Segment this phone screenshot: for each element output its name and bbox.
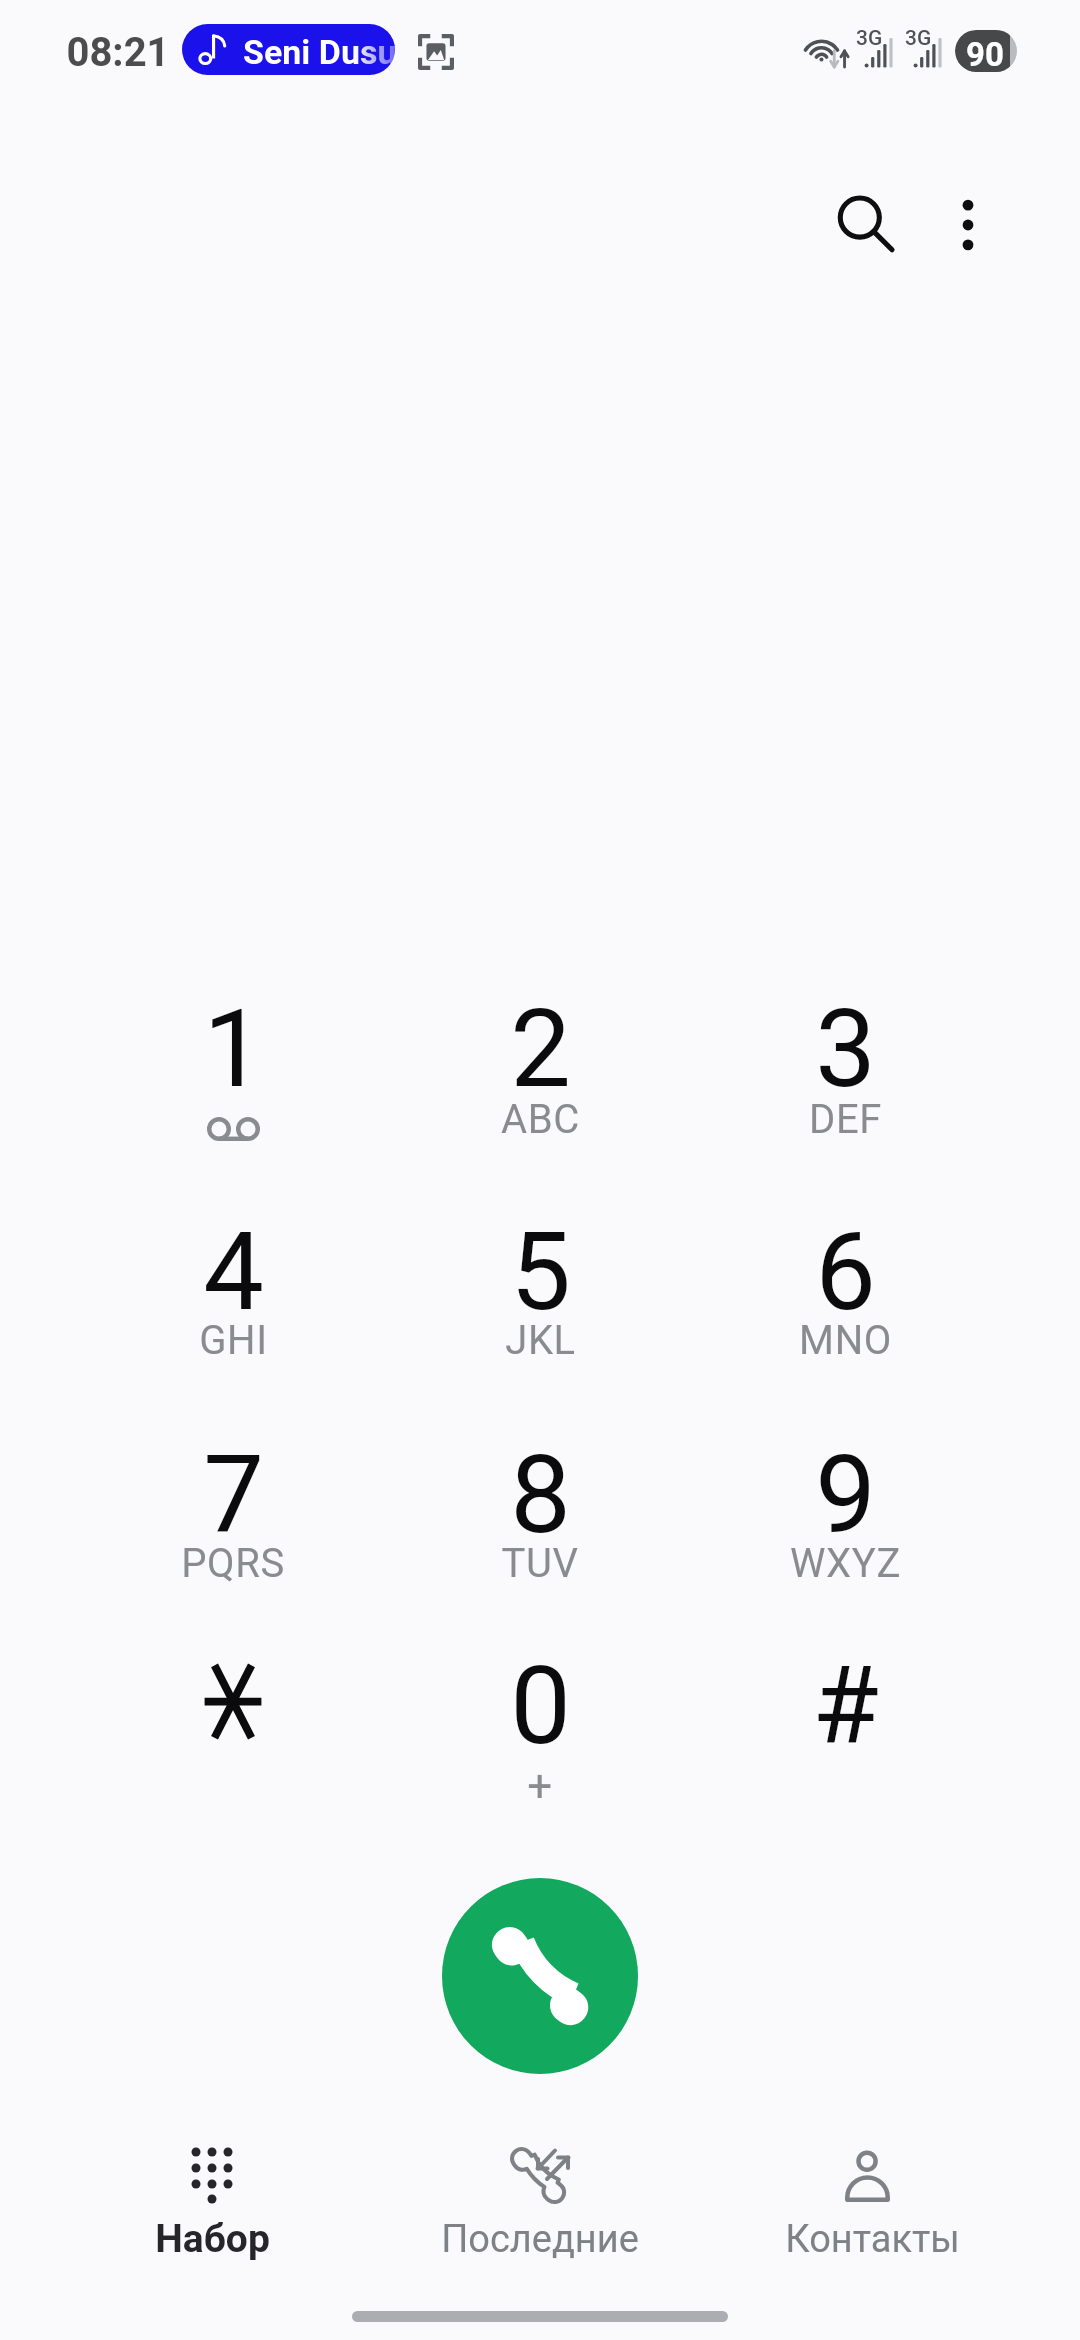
staticText: Контакты [785,2217,960,2262]
button[interactable]: More options [912,169,1024,281]
staticText: MNO [799,1317,892,1364]
button[interactable]: Key 4 [83,1177,383,1377]
button[interactable]: Key 2 [390,954,690,1154]
button[interactable]: Key 3 [695,954,995,1154]
button[interactable] [390,2130,690,2280]
staticText: PQRS [181,1540,285,1587]
button[interactable]: Key * [83,1611,383,1811]
staticText: 3G [905,26,932,51]
staticText: 3 [815,986,876,1113]
button[interactable] [62,2130,362,2280]
staticText: 9 [815,1432,876,1559]
staticText: Seni Dusu [243,32,395,72]
staticText: 6 [815,1209,876,1336]
button[interactable]: Key 5 [390,1177,690,1377]
staticText: 1 [203,986,264,1113]
staticText: 5 [510,1209,571,1336]
button[interactable]: Key 1 [83,954,383,1154]
staticText: 3G [856,26,883,51]
staticText: # [812,1643,879,1770]
staticText: DEF [809,1096,882,1143]
button[interactable]: Key 0 [390,1611,690,1811]
button[interactable]: Key # [695,1611,995,1811]
button[interactable]: Search [810,169,922,281]
staticText: 0 [510,1643,571,1770]
staticText: WXYZ [790,1540,901,1587]
staticText: 08:21 [66,29,170,76]
staticText: 8 [510,1432,571,1559]
button[interactable]: Scan [418,34,454,70]
button[interactable]: Key 8 [390,1400,690,1600]
staticText: + [527,1760,553,1812]
staticText: 7 [203,1432,264,1559]
staticText: 4 [203,1209,264,1336]
staticText: TUV [501,1540,579,1587]
button[interactable]: Call [442,1878,638,2074]
button[interactable] [722,2130,1022,2280]
button[interactable]: Seni Dusu [182,24,395,75]
staticText: Последние [441,2217,639,2262]
staticText: 90 [966,35,1004,72]
staticText: GHI [199,1317,268,1364]
staticText: Набор [155,2216,270,2262]
staticText: 2 [510,986,571,1113]
button[interactable]: Key 7 [83,1400,383,1600]
staticText: ABC [501,1096,580,1143]
button[interactable]: Key 6 [695,1177,995,1377]
staticText: JKL [505,1317,576,1364]
button[interactable]: Key 9 [695,1400,995,1600]
